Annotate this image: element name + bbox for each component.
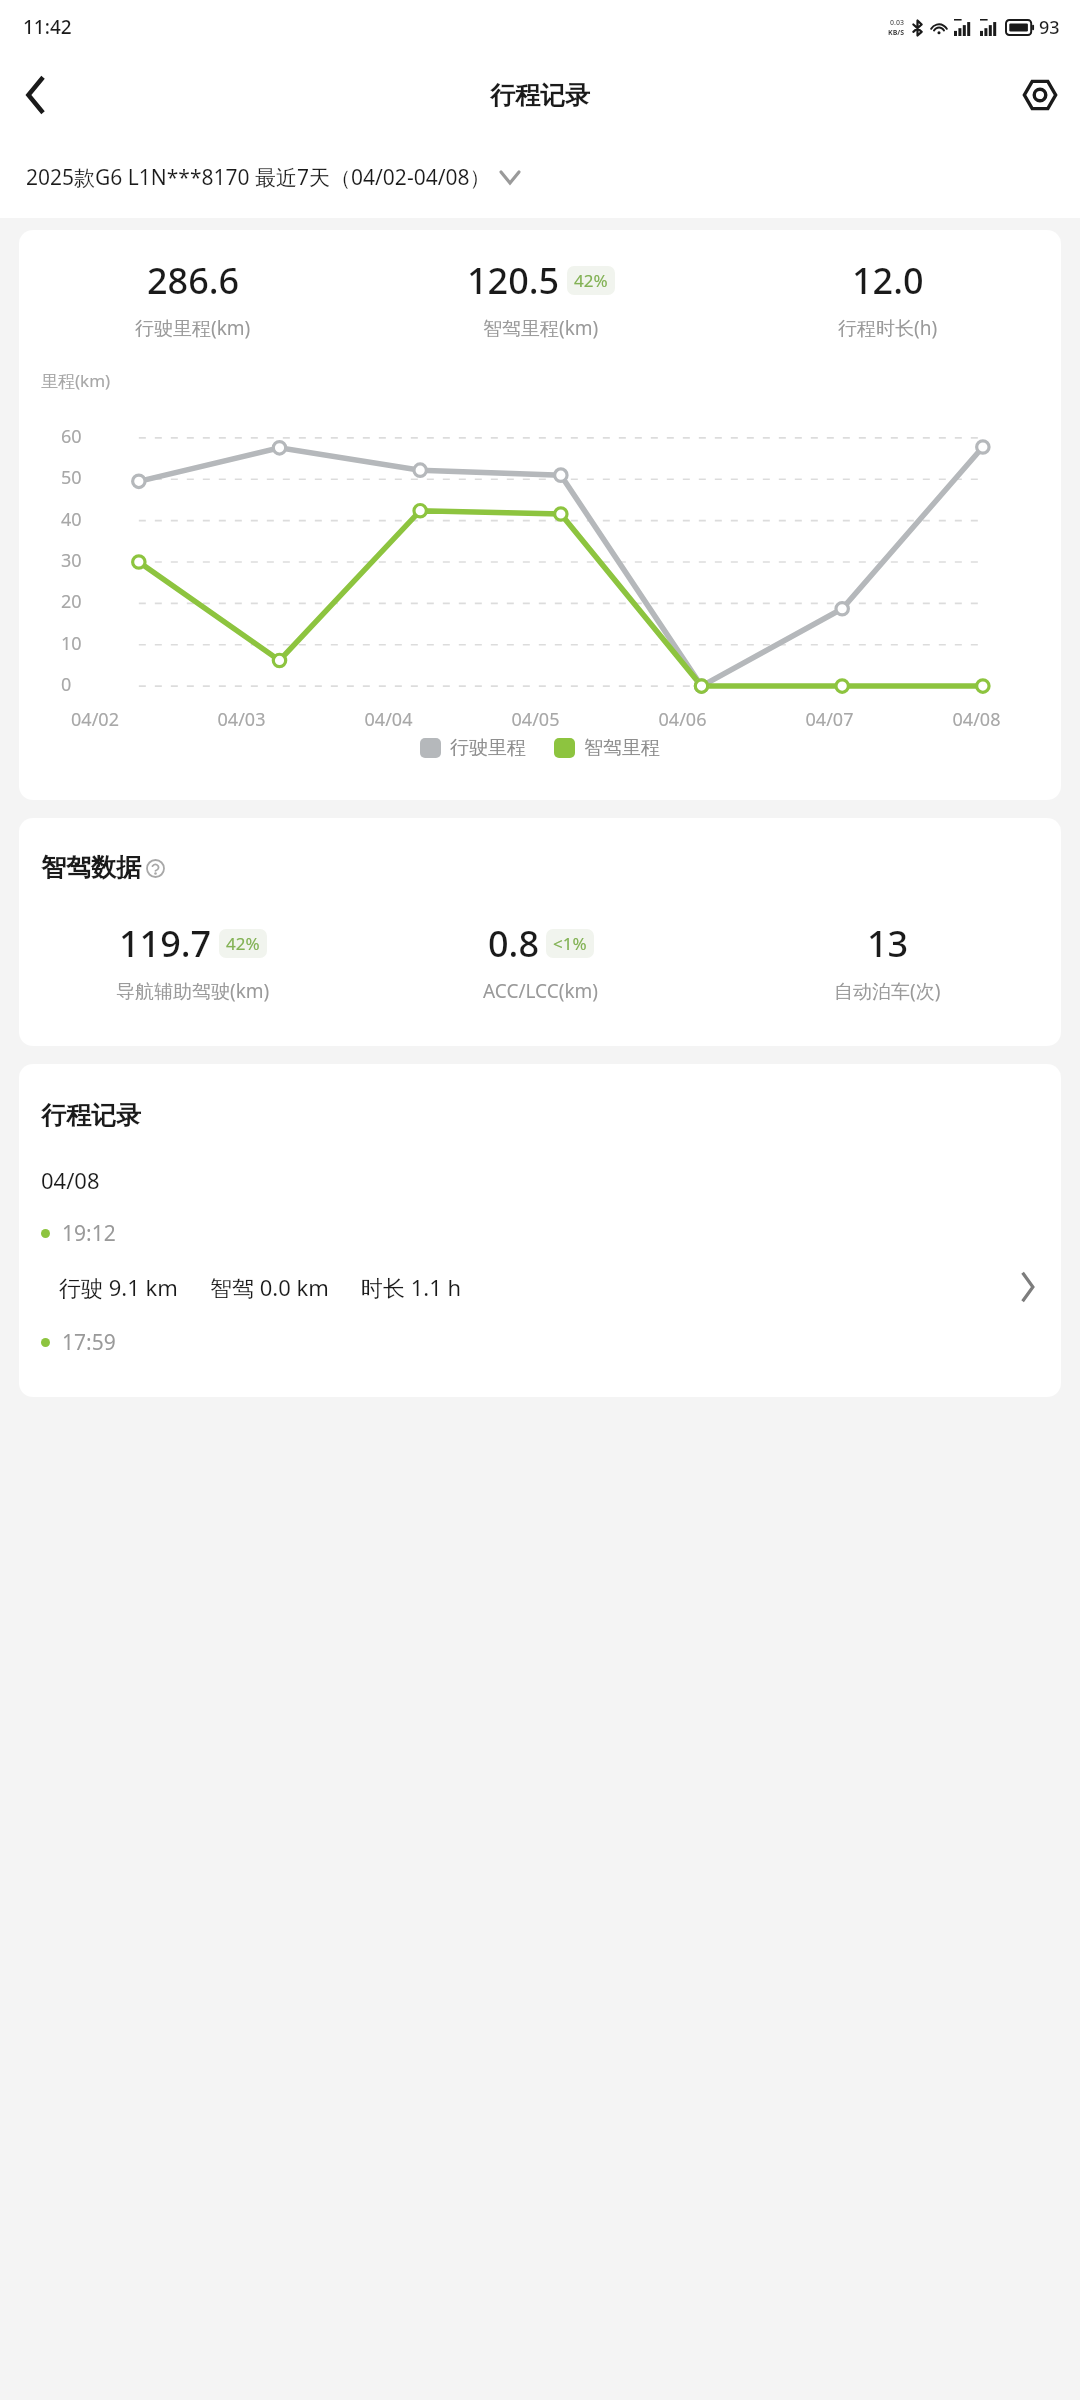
staticText: 11:42 [23,14,72,40]
staticText: KB/S [888,28,905,38]
staticText: 里程(km) [41,369,111,392]
staticText: 时长 1.1 h [361,1272,462,1302]
staticText: 2025款G6 L1N***8170 最近7天（04/02-04/08） [26,163,491,192]
staticText: 04/07 [756,707,903,732]
button[interactable]: 0.8 [367,919,714,1004]
button[interactable]: 13 [714,919,1061,1004]
staticText: 自动泊车(次) [834,978,941,1004]
staticText: 行程记录 [490,80,590,111]
staticText: 60 [61,424,82,449]
staticText: 17:59 [62,1328,116,1357]
staticText: 行程记录 [41,1100,141,1131]
button[interactable]: 286.6 [19,256,367,341]
staticText: 13 [867,919,909,968]
staticText: 19:12 [62,1219,116,1248]
staticText: 286.6 [147,256,240,305]
staticText: 04/05 [462,707,609,732]
staticText: 93 [1039,15,1060,40]
staticText: 04/03 [168,707,315,732]
staticText: 20 [61,589,82,614]
staticText: <1% [553,932,587,955]
button[interactable]: Back [8,67,64,123]
staticText: 行驶里程(km) [135,315,251,341]
staticText: 04/04 [315,707,462,732]
staticText: 行驶 9.1 km [59,1272,178,1302]
staticText: ACC/LCC(km) [483,978,598,1004]
staticText: 导航辅助驾驶(km) [116,978,270,1004]
staticText: 12.0 [852,256,924,305]
staticText: 0 [61,672,72,697]
staticText: 42% [574,269,608,292]
button[interactable]: Settings [1012,67,1068,123]
staticText: 0.8 [488,919,539,968]
staticText: 40 [61,507,82,532]
staticText: 行程时长(h) [838,315,938,341]
button[interactable]: 119.7 [19,919,367,1004]
button[interactable]: 19:12 [19,1219,1061,1302]
staticText: 119.7 [119,919,212,968]
staticText: 10 [61,631,82,656]
staticText: 智驾里程 [584,736,660,760]
staticText: 04/08 [903,707,1050,732]
button[interactable]: 2025款G6 L1N***8170 最近7天（04/02-04/08） [0,136,1080,218]
button[interactable]: Help [143,856,167,880]
staticText: 行驶里程 [450,736,526,760]
staticText: 智驾里程(km) [483,315,599,341]
staticText: 智驾数据 [41,852,141,883]
staticText: 42% [226,932,260,955]
button[interactable]: 120.5 [367,256,714,341]
staticText: 120.5 [467,256,560,305]
staticText: 04/08 [41,1165,100,1195]
staticText: 30 [61,548,82,573]
staticText: 0.03 [890,18,904,28]
staticText: 04/02 [22,707,168,732]
staticText: 智驾 0.0 km [210,1272,329,1302]
staticText: 04/06 [609,707,756,732]
staticText: 50 [61,465,82,490]
button[interactable]: 12.0 [714,256,1061,341]
